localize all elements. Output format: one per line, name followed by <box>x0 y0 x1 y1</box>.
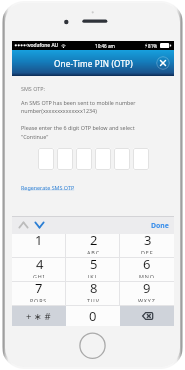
button[interactable]: 2 <box>66 234 120 257</box>
staticText: 10:46 am <box>95 43 115 49</box>
staticText: 0 <box>89 307 97 325</box>
button[interactable]: Delete <box>120 306 174 326</box>
button[interactable]: 7 <box>12 282 66 305</box>
staticText: 8 <box>90 279 98 297</box>
staticText: DEF <box>141 249 154 254</box>
button[interactable]: 1 <box>12 234 66 257</box>
staticText: "Continue" <box>21 133 49 140</box>
button[interactable]: OTP digit 2 <box>57 148 73 170</box>
staticText: An SMS OTP has been sent to mobile numbe… <box>21 99 136 106</box>
button[interactable]: OTP digit 3 <box>76 148 92 170</box>
button[interactable]: OTP digit 1 <box>38 148 54 170</box>
button[interactable]: Regenerate SMS OTP <box>21 184 75 191</box>
staticText: Regenerate SMS OTP <box>21 184 75 191</box>
button[interactable]: 8 <box>66 282 120 305</box>
button[interactable]: OTP digit 4 <box>95 148 111 170</box>
staticText: JKL <box>88 273 99 278</box>
button[interactable]: 6 <box>120 258 174 281</box>
button[interactable]: 0 <box>66 306 120 326</box>
staticText: vodafone AU <box>28 42 59 49</box>
staticText: 6 <box>143 255 151 273</box>
staticText: 1 <box>35 231 43 249</box>
staticText: number(xxxxxxxxxxxxxx1234) <box>21 107 97 114</box>
staticText: PQRS <box>30 297 48 302</box>
staticText: GHI <box>33 273 46 278</box>
button[interactable]: 3 <box>120 234 174 257</box>
button[interactable]: Next field <box>33 218 46 232</box>
button[interactable]: 9 <box>120 282 174 305</box>
button[interactable]: OTP digit 6 <box>133 148 149 170</box>
staticText: 81% <box>148 43 158 49</box>
button[interactable]: OTP digit 5 <box>114 148 130 170</box>
button[interactable]: Done <box>151 221 169 230</box>
staticText: MNO <box>139 273 155 278</box>
button[interactable]: + ∗ # <box>12 306 66 326</box>
staticText: 9 <box>143 279 151 297</box>
staticText: 2 <box>90 231 98 249</box>
staticText: WXYZ <box>138 297 156 302</box>
staticText: 3 <box>144 231 152 249</box>
staticText: 7 <box>35 279 43 297</box>
staticText: + ∗ # <box>26 310 52 323</box>
button[interactable]: 4 <box>12 258 66 281</box>
button[interactable]: 5 <box>66 258 120 281</box>
staticText: SMS OTP: <box>21 85 45 92</box>
staticText: ABC <box>87 249 100 254</box>
staticText: TUV <box>87 297 100 302</box>
button[interactable]: Previous field <box>17 218 30 232</box>
staticText: One-Time PIN (OTP) <box>54 58 133 69</box>
staticText: 4 <box>36 255 44 273</box>
staticText: Please enter the 6 digit OTP below and s… <box>21 124 135 131</box>
staticText: Done <box>151 221 169 230</box>
button[interactable]: Close <box>156 56 170 70</box>
staticText: 5 <box>90 255 98 273</box>
